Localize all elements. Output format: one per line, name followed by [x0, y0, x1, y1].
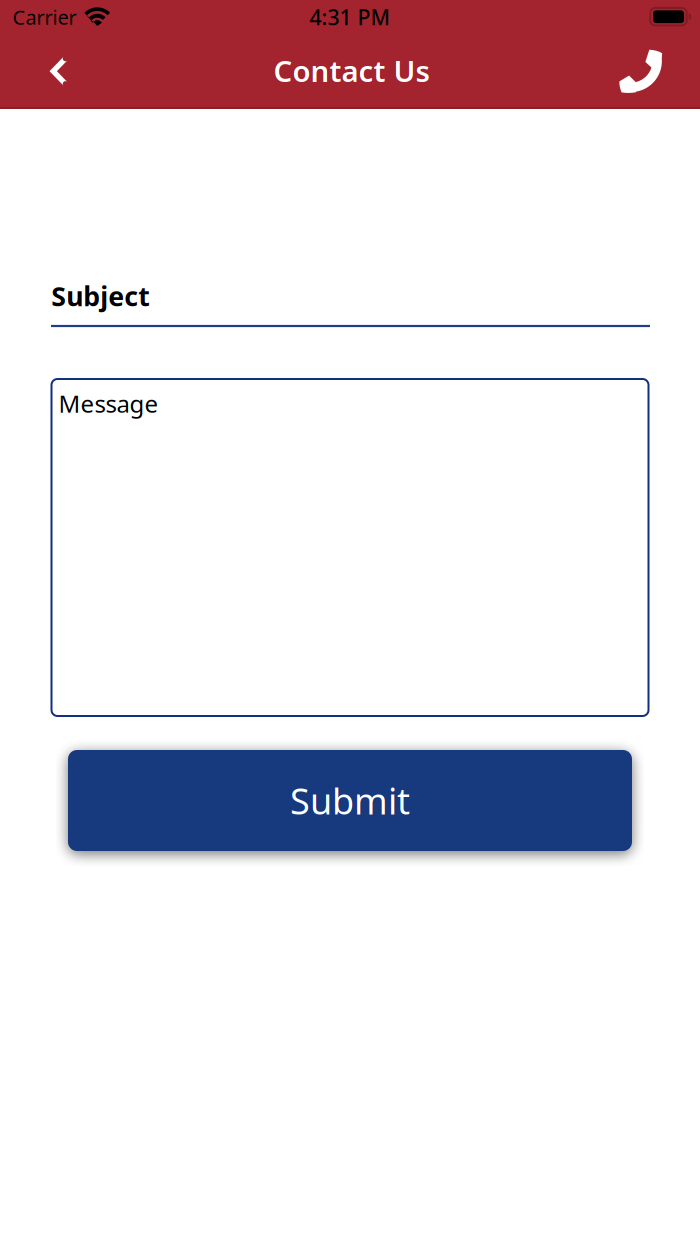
- button[interactable]: Submit: [68, 750, 632, 851]
- button[interactable]: Call: [609, 34, 673, 108]
- staticText: Subject: [51, 278, 150, 314]
- staticText: Submit: [290, 777, 410, 824]
- staticText: Carrier: [12, 4, 76, 30]
- button[interactable]: Back: [27, 34, 91, 108]
- staticText: Contact Us: [273, 51, 429, 90]
- staticText: Message: [58, 388, 158, 419]
- staticText: 4:31 PM: [309, 3, 390, 31]
